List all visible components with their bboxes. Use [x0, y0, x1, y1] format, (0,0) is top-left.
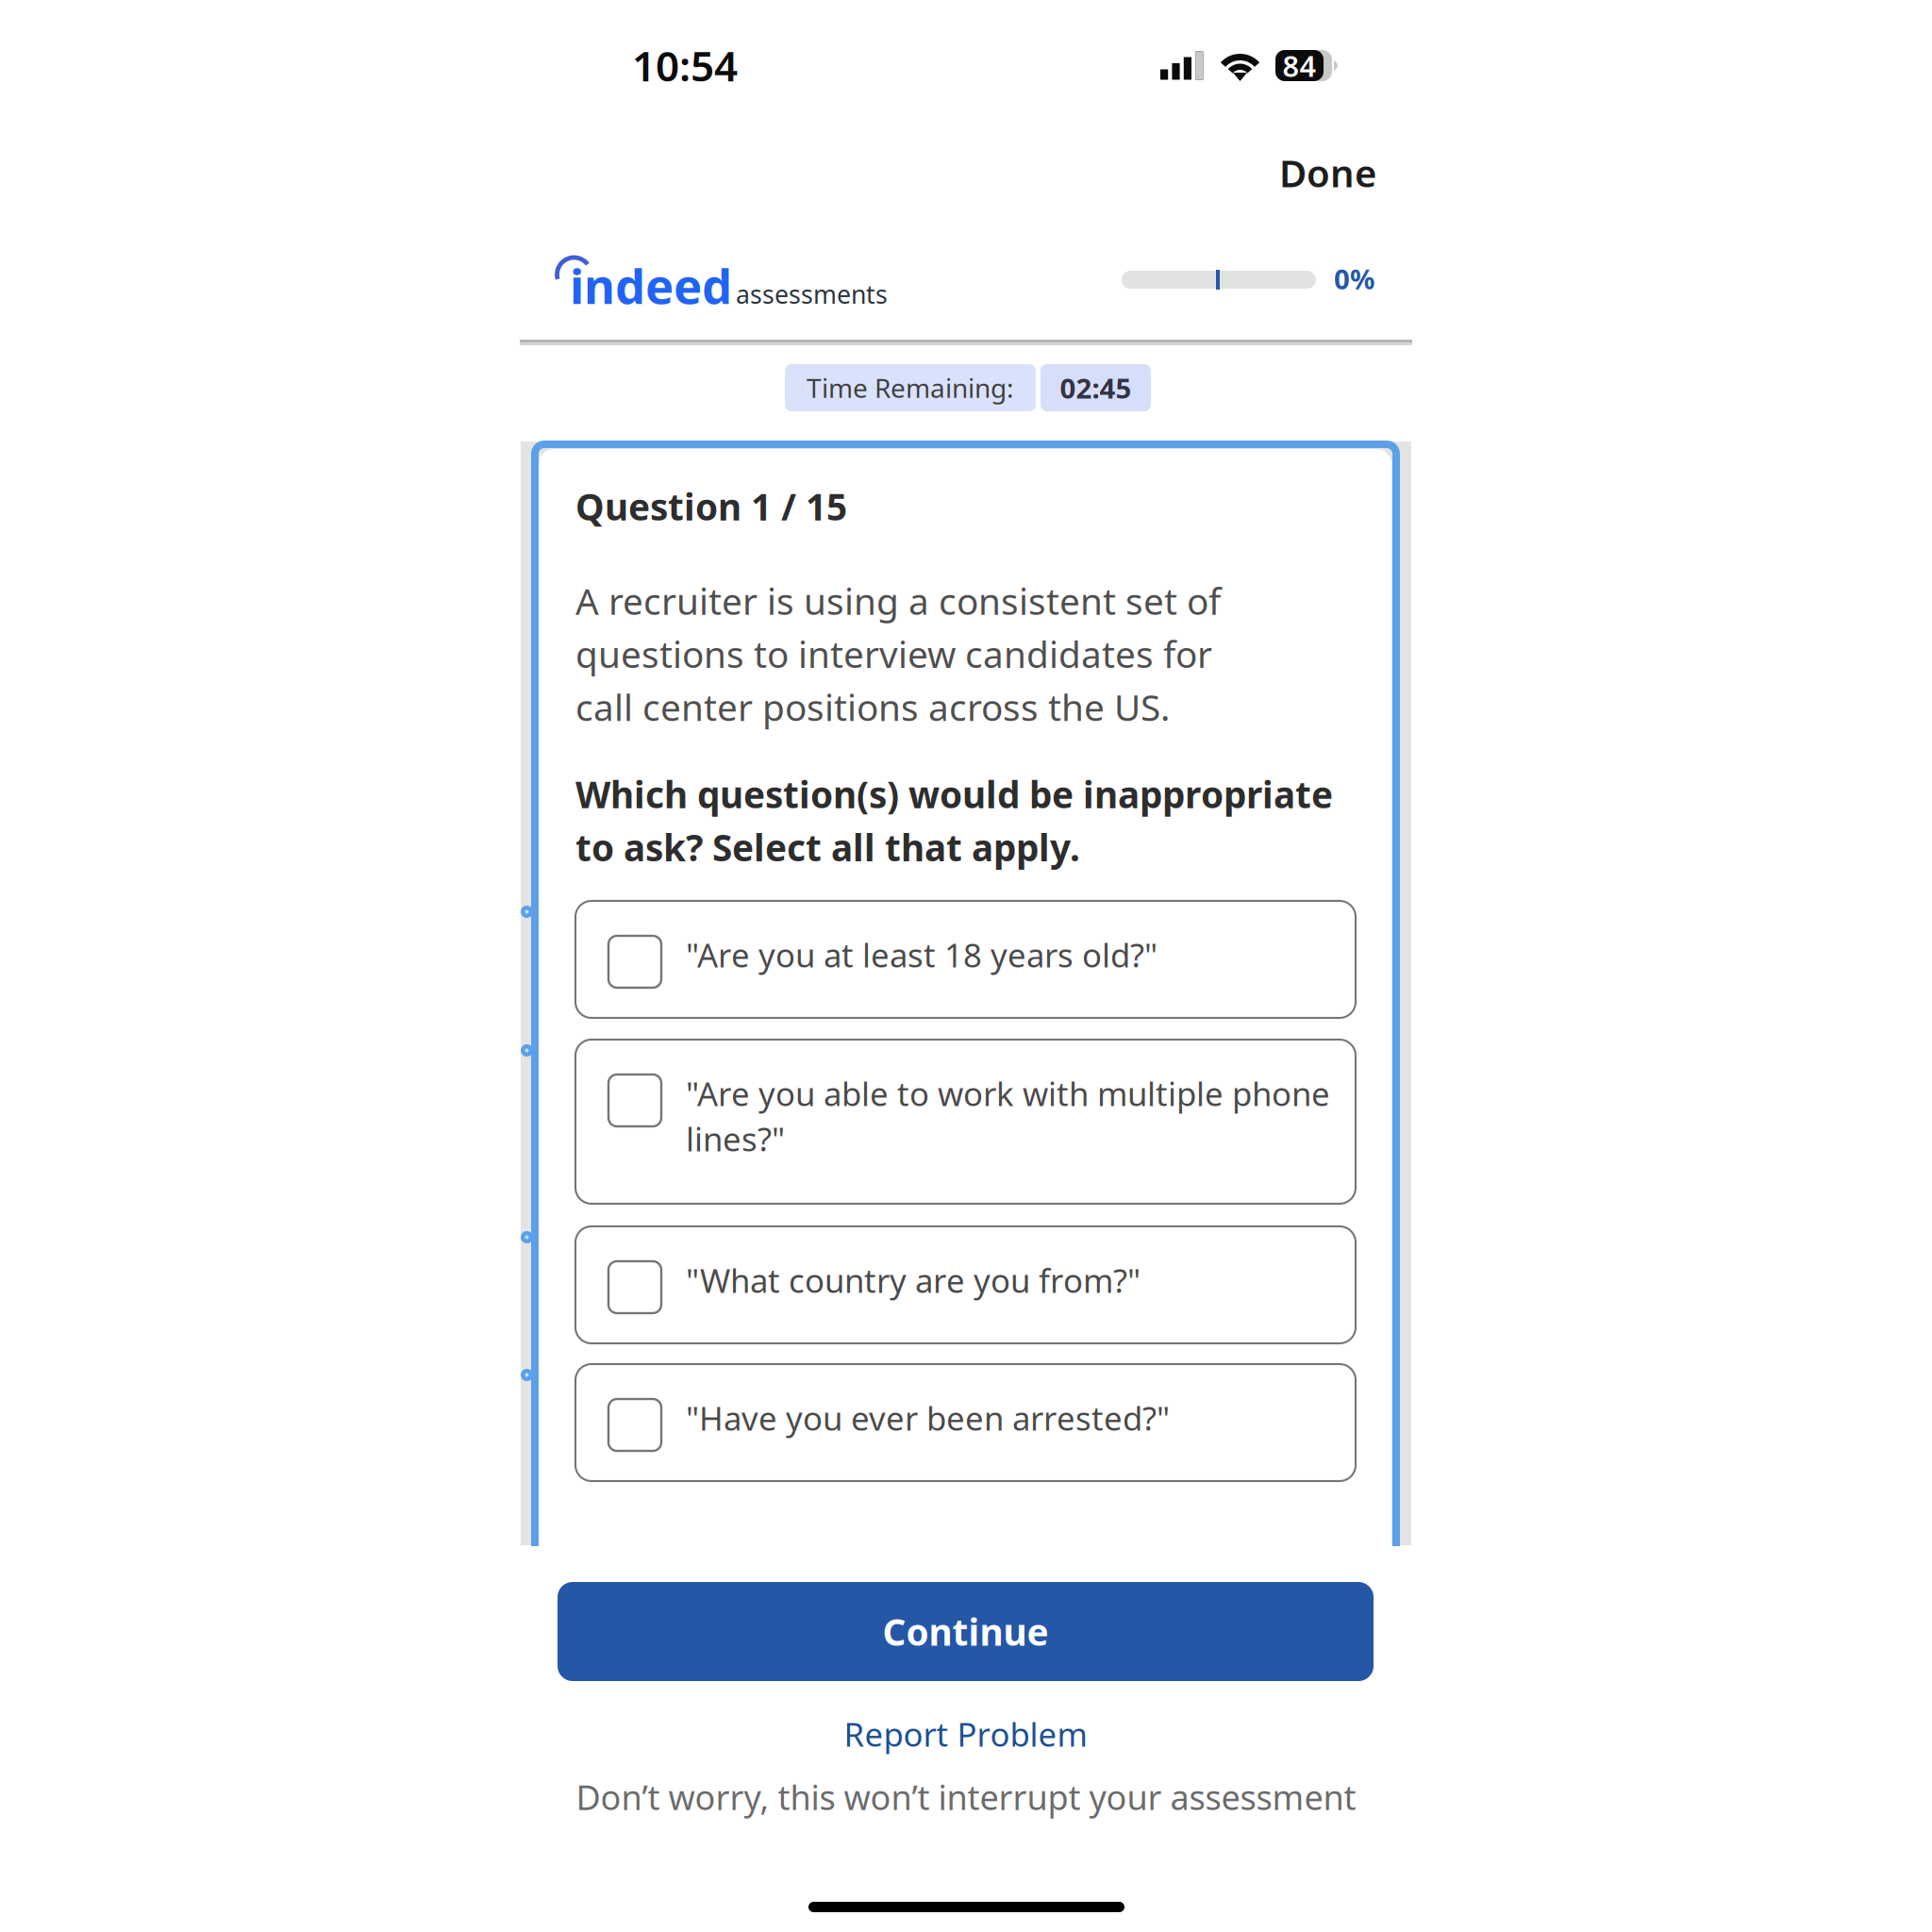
- staticText: Time Remaining:: [807, 370, 1014, 405]
- staticText: Which question(s) would be inappropriate…: [575, 770, 1333, 871]
- staticText: 02:45: [1060, 369, 1132, 406]
- staticText: A recruiter is using a consistent set of…: [575, 576, 1221, 731]
- staticText: 0%: [1334, 260, 1374, 297]
- button[interactable]: Report Problem: [558, 1705, 1374, 1763]
- staticText: Question 1 / 15: [575, 482, 847, 530]
- button[interactable]: "Are you at least 18 years old?": [575, 901, 1356, 1018]
- button[interactable]: "Are you able to work with multiple phon…: [575, 1040, 1356, 1204]
- staticText: "Have you ever been arrested?": [686, 1396, 1170, 1440]
- staticText: "What country are you from?": [686, 1258, 1141, 1302]
- staticText: assessments: [736, 277, 888, 311]
- staticText: indeed: [570, 254, 732, 317]
- staticText: 84: [1282, 46, 1316, 85]
- staticText: "Are you able to work with multiple phon…: [686, 1072, 1330, 1160]
- staticText: Done: [1279, 148, 1376, 198]
- button[interactable]: Continue: [558, 1582, 1374, 1681]
- staticText: Don’t worry, this won’t interrupt your a…: [576, 1774, 1356, 1820]
- button[interactable]: "Have you ever been arrested?": [575, 1364, 1356, 1481]
- button[interactable]: "What country are you from?": [575, 1226, 1356, 1343]
- staticText: "Are you at least 18 years old?": [686, 933, 1158, 976]
- staticText: Report Problem: [844, 1712, 1087, 1756]
- staticText: Continue: [883, 1607, 1049, 1656]
- staticText: 10:54: [632, 38, 738, 93]
- button[interactable]: Done: [1235, 138, 1376, 208]
